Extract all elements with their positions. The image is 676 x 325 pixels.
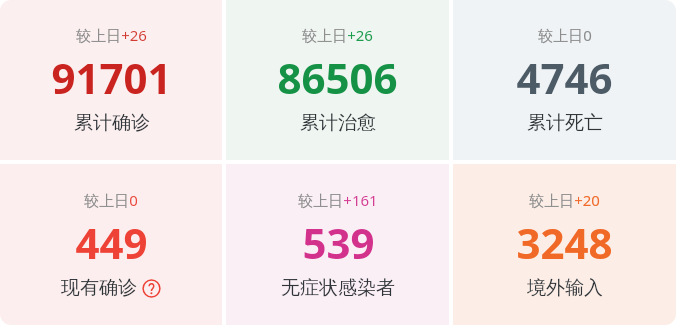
button[interactable]: 较上日+26 bbox=[226, 0, 449, 160]
staticText: 86506 bbox=[277, 49, 398, 106]
staticText: 累计死亡 bbox=[527, 111, 603, 135]
button[interactable]: 较上日+20 bbox=[453, 164, 676, 325]
staticText: 无症状感染者 bbox=[281, 276, 395, 300]
button[interactable]: 较上日+161 bbox=[226, 164, 449, 325]
staticText: 现有确诊 bbox=[61, 276, 137, 300]
staticText: 较上日0 bbox=[538, 25, 592, 45]
staticText: 449 bbox=[75, 214, 148, 271]
button[interactable]: 较上日+26 bbox=[0, 0, 222, 160]
staticText: 累计治愈 bbox=[300, 111, 376, 135]
staticText: 3248 bbox=[516, 214, 613, 271]
staticText: 4746 bbox=[516, 49, 613, 106]
staticText: 较上日+20 bbox=[529, 190, 600, 210]
staticText: 较上日0 bbox=[84, 190, 138, 210]
button[interactable]: 较上日0 bbox=[453, 0, 676, 160]
button[interactable]: 关于现有确诊的说明 bbox=[142, 279, 161, 298]
staticText: 累计确诊 bbox=[74, 111, 150, 135]
staticText: 91701 bbox=[51, 49, 172, 106]
staticText: 539 bbox=[302, 214, 375, 271]
staticText: 较上日+161 bbox=[298, 190, 378, 210]
staticText: 境外输入 bbox=[527, 276, 603, 300]
button[interactable]: 较上日0 bbox=[0, 164, 222, 325]
staticText: 较上日+26 bbox=[76, 25, 147, 45]
staticText: 较上日+26 bbox=[302, 25, 373, 45]
